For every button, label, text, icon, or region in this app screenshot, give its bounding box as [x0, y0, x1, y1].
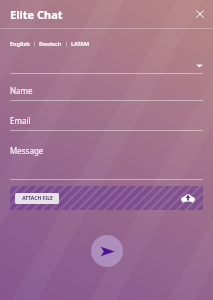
button[interactable]: LATAM: [71, 40, 90, 47]
staticText: |: [30, 40, 39, 47]
button[interactable]: Name: [10, 85, 203, 96]
staticText: ATTACH FILE: [22, 195, 53, 202]
staticText: Name: [10, 85, 33, 96]
staticText: Message: [10, 145, 44, 156]
button[interactable]: ATTACH FILE: [15, 193, 59, 204]
staticText: English: [10, 40, 30, 47]
button[interactable]: Close: [192, 6, 208, 22]
staticText: Deutsch: [39, 40, 62, 47]
button[interactable]: English: [10, 40, 30, 47]
staticText: LATAM: [71, 40, 90, 47]
button[interactable]: Message: [10, 145, 203, 156]
staticText: |: [62, 40, 71, 47]
staticText: Email: [10, 115, 31, 126]
button[interactable]: Select language: [10, 57, 203, 73]
button[interactable]: Upload file: [180, 190, 196, 206]
button[interactable]: ATTACH FILE: [10, 186, 203, 210]
button[interactable]: Email: [10, 115, 203, 126]
button[interactable]: Send: [91, 235, 123, 267]
button[interactable]: Deutsch: [39, 40, 62, 47]
staticText: Elite Chat: [10, 7, 63, 22]
